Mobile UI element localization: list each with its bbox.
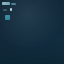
button[interactable]: Header — [2, 2, 10, 5]
button[interactable]: Card — [5, 15, 10, 20]
button[interactable]: Menu — [11, 3, 16, 5]
button[interactable]: Add — [10, 8, 12, 11]
